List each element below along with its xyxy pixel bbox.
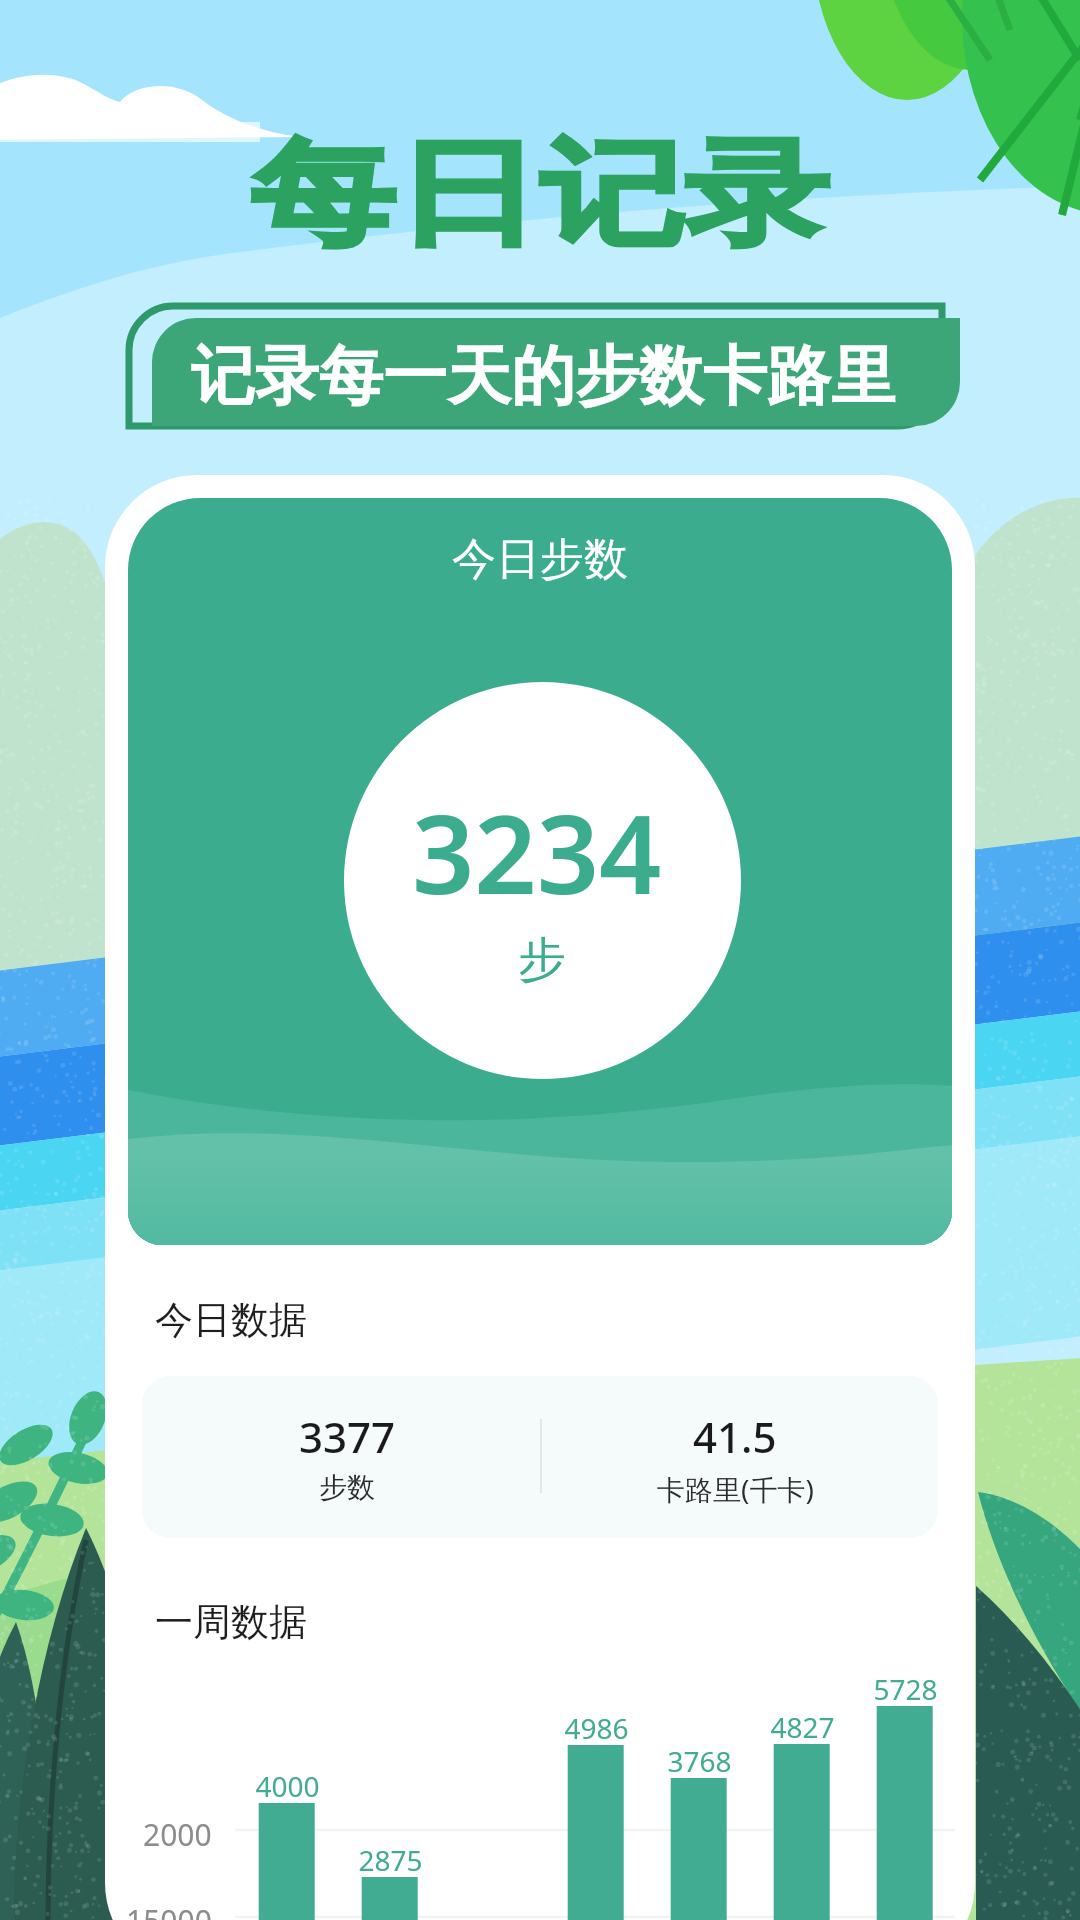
button[interactable]: 记录每一天的步数卡路里 [152,318,960,426]
staticText: 步数 [319,1470,375,1505]
staticText: 2875 [358,1841,423,1879]
staticText: 每日记录 [251,123,829,267]
staticText: 步 [518,930,566,990]
staticText: 4000 [255,1767,320,1805]
staticText: 今日数据 [155,1296,307,1344]
staticText: 5728 [873,1670,938,1708]
staticText: 4986 [564,1709,629,1747]
staticText: 一周数据 [155,1598,307,1646]
button[interactable]: 3377 [142,1376,938,1538]
staticText: 今日步数 [452,532,628,587]
staticText: 15000 [126,1900,212,1920]
staticText: 3234 [412,777,662,925]
staticText: 卡路里(千卡) [657,1470,814,1508]
staticText: 3768 [667,1742,732,1780]
staticText: 3377 [299,1408,396,1465]
staticText: 记录每一天的步数卡路里 [191,336,895,417]
staticText: 4827 [770,1708,835,1746]
button[interactable]: 今日步数 [128,498,952,1245]
staticText: 2000 [143,1814,212,1855]
staticText: 41.5 [693,1408,777,1465]
